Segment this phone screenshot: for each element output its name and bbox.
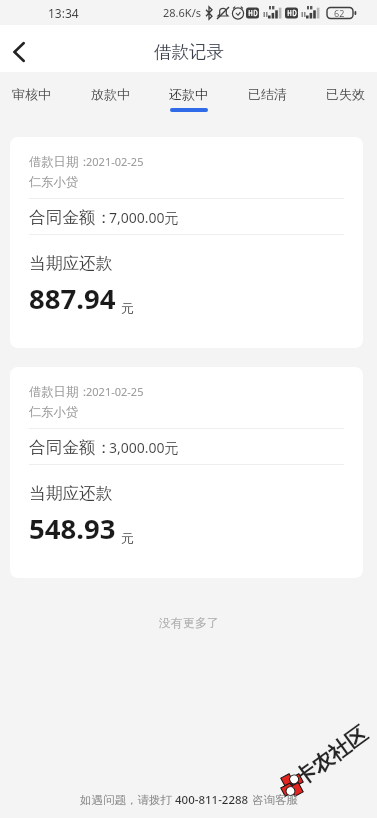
staticText: 当期应还款 <box>29 483 113 504</box>
staticText: 合同金额： <box>29 437 112 458</box>
button[interactable]: 借款日期： <box>10 137 363 348</box>
staticText: 28.6K/s <box>163 5 201 20</box>
staticText: 元 <box>121 300 134 316</box>
staticText: 2021-02-25 <box>86 384 144 399</box>
staticText: 62 <box>334 7 345 19</box>
staticText: 合同金额： <box>29 207 112 228</box>
staticText: 咨询客服 <box>249 792 298 808</box>
button[interactable]: 已失效 <box>326 72 365 114</box>
staticText: 13:34 <box>48 5 79 21</box>
staticText: 还款中 <box>169 86 208 102</box>
staticText: 已结清 <box>248 86 287 102</box>
staticText: 当期应还款 <box>29 253 113 274</box>
staticText: 元 <box>121 530 134 546</box>
button[interactable]: 已结清 <box>248 72 287 114</box>
staticText: 仁东小贷 <box>29 174 79 189</box>
button[interactable]: 还款中 <box>169 72 208 114</box>
staticText: 卡农社区 <box>289 721 373 791</box>
button[interactable]: 借款日期： <box>10 367 363 578</box>
staticText: 借款日期： <box>29 154 91 169</box>
staticText: 已失效 <box>326 86 365 102</box>
staticText: 没有更多了 <box>159 615 219 630</box>
button[interactable]: 审核中 <box>12 72 51 114</box>
staticText: 借款日期： <box>29 384 91 399</box>
button[interactable]: 放款中 <box>91 72 130 114</box>
staticText: 7,000.00元 <box>109 208 179 227</box>
staticText: 887.94 <box>29 280 116 317</box>
staticText: 3,000.00元 <box>109 438 179 457</box>
staticText: 借款记录 <box>154 41 224 63</box>
button[interactable]: 400-811-2288 <box>175 792 249 808</box>
button[interactable]: Back <box>0 31 42 73</box>
staticText: 2021-02-25 <box>86 154 144 169</box>
staticText: 放款中 <box>91 86 130 102</box>
staticText: 如遇问题，请拨打 <box>80 792 175 808</box>
staticText: 548.93 <box>29 510 116 547</box>
staticText: 审核中 <box>12 86 51 102</box>
staticText: 仁东小贷 <box>29 404 79 419</box>
